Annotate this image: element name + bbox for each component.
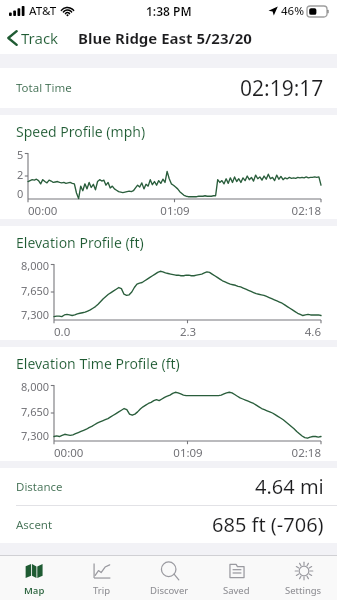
button[interactable]: Total Time — [0, 68, 337, 108]
staticText: 01:09 — [152, 203, 198, 219]
staticText: 02:18 — [275, 445, 321, 461]
staticText: Settings — [285, 584, 322, 597]
staticText: Saved — [223, 584, 250, 597]
staticText: 00:00 — [28, 203, 74, 219]
button[interactable]: Speed Profile (mph) — [0, 115, 337, 219]
staticText: 2.3 — [165, 324, 211, 340]
staticText: 02:18 — [275, 203, 321, 219]
button[interactable]: Discover — [136, 556, 203, 600]
staticText: 7,650 — [21, 404, 50, 419]
staticText: 0 — [17, 186, 24, 201]
staticText: 01:09 — [165, 445, 211, 461]
staticText: Elevation Time Profile (ft) — [16, 354, 180, 373]
staticText: 7,300 — [21, 307, 50, 322]
button[interactable]: Trip — [68, 556, 136, 600]
staticText: 1:38 PM — [146, 3, 192, 19]
staticText: Blue Ridge East 5/23/20 — [78, 28, 252, 48]
staticText: Distance — [16, 479, 63, 495]
staticText: Ascent — [16, 517, 53, 533]
staticText: 00:00 — [54, 445, 100, 461]
staticText: 8,000 — [21, 258, 50, 273]
staticText: Map — [24, 584, 45, 597]
staticText: 4.6 — [275, 324, 321, 340]
staticText: Discover — [150, 584, 189, 597]
staticText: 5 — [17, 147, 24, 162]
staticText: 2 — [17, 167, 24, 182]
staticText: Elevation Profile (ft) — [16, 233, 144, 252]
staticText: 0.0 — [54, 324, 100, 340]
button[interactable]: Track — [0, 24, 65, 52]
button[interactable]: Distance — [0, 468, 337, 505]
button[interactable]: Ascent — [0, 506, 337, 543]
staticText: AT&T — [29, 3, 57, 19]
staticText: Track — [21, 28, 59, 48]
staticText: 02:19:17 — [240, 74, 324, 103]
button[interactable]: Map — [0, 556, 68, 600]
staticText: 46% — [281, 3, 304, 19]
staticText: 8,000 — [21, 379, 50, 394]
staticText: Total Time — [16, 80, 72, 96]
staticText: Speed Profile (mph) — [16, 122, 146, 141]
button[interactable]: Settings — [270, 556, 337, 600]
button[interactable]: Elevation Profile (ft) — [0, 226, 337, 340]
staticText: 7,300 — [21, 428, 50, 443]
button[interactable]: Elevation Time Profile (ft) — [0, 347, 337, 461]
staticText: 4.64 mi — [255, 473, 324, 500]
button[interactable]: Saved — [203, 556, 270, 600]
staticText: 7,650 — [21, 283, 50, 298]
staticText: 685 ft (-706) — [212, 511, 324, 538]
staticText: Trip — [93, 584, 111, 597]
